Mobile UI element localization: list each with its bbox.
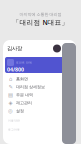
- staticText: ◈: [8, 100, 12, 106]
- button[interactable]: ⌂: [3, 75, 76, 83]
- staticText: 대리점 상세정보: [16, 84, 45, 89]
- staticText: 재고관리: [16, 100, 32, 105]
- staticText: ◎: [8, 108, 13, 114]
- staticText: 주문 내역: [16, 92, 33, 97]
- button[interactable]: 포인트 잔액: [5, 57, 71, 73]
- button[interactable]: 로그아웃: [3, 125, 76, 134]
- button[interactable]: ◈: [3, 99, 76, 107]
- staticText: 「대리점 N대표」: [12, 18, 68, 27]
- staticText: 포인트 잔액: [16, 61, 32, 64]
- button[interactable]: ▤: [3, 91, 76, 99]
- button[interactable]: 프로필: [53, 44, 61, 52]
- staticText: ▤: [8, 92, 13, 98]
- staticText: 04/800: [7, 66, 24, 73]
- staticText: 설정: [16, 108, 24, 113]
- staticText: 이용약관: [8, 119, 20, 122]
- button[interactable]: ✎: [3, 83, 76, 91]
- staticText: 마지막에 소통한 대리점: [19, 12, 61, 17]
- button[interactable]: ◎: [3, 107, 76, 115]
- staticText: ✎: [8, 84, 12, 90]
- staticText: 김사장: [7, 45, 22, 52]
- staticText: 홈화면: [16, 76, 28, 81]
- staticText: 로그아웃: [8, 128, 20, 131]
- staticText: ⌂: [9, 76, 12, 82]
- button[interactable]: 이용약관: [3, 116, 76, 125]
